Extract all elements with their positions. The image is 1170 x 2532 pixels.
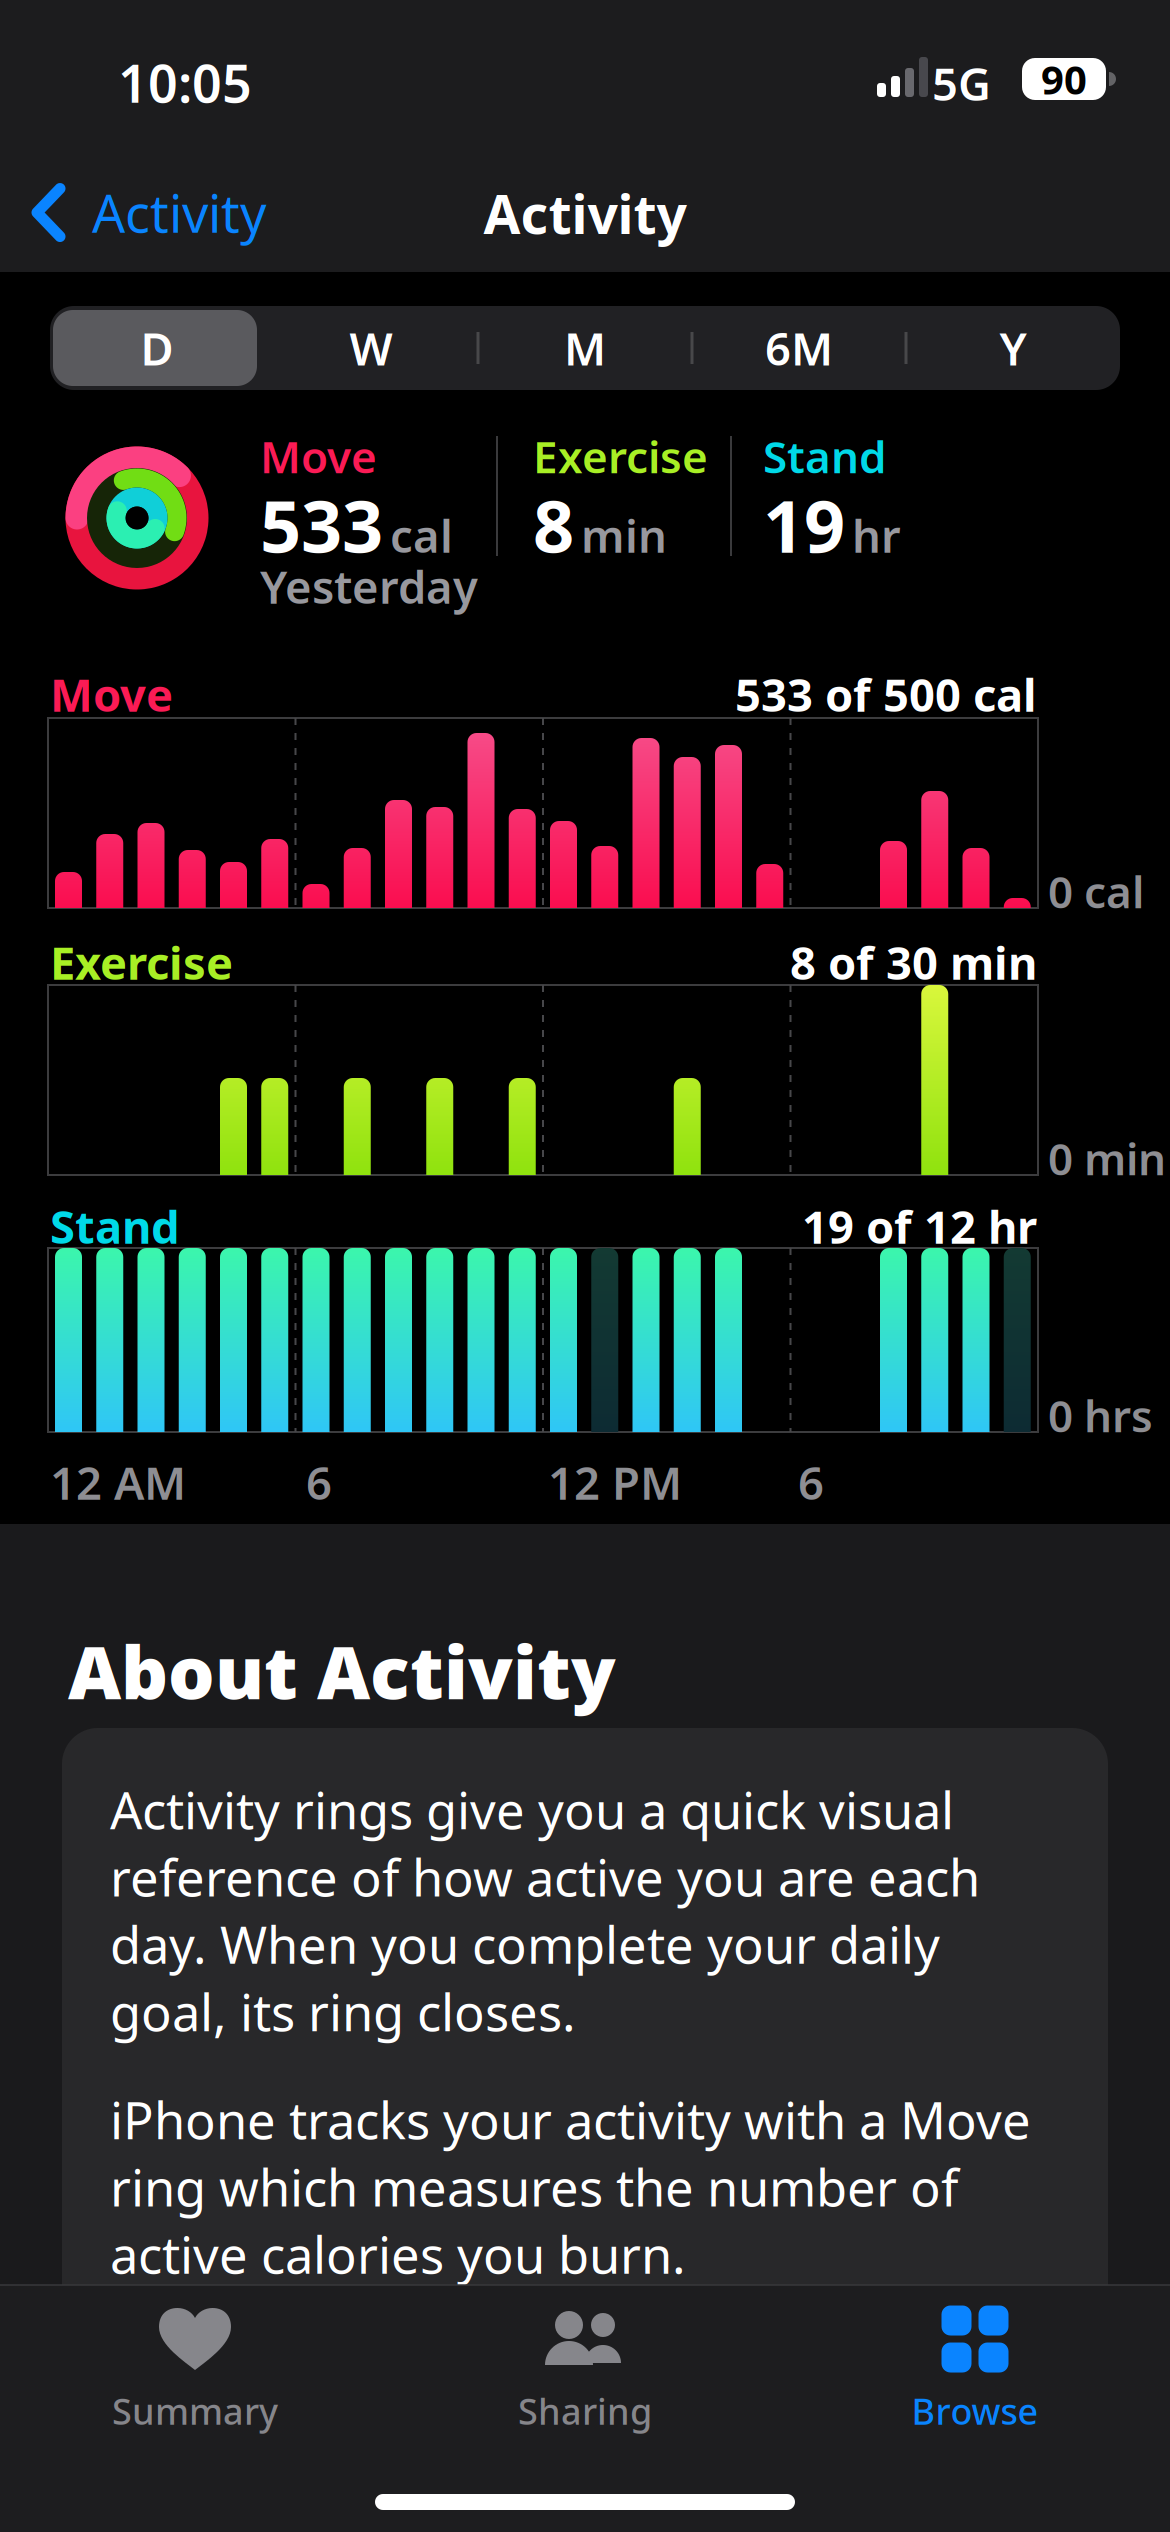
staticText: 12 PM — [548, 1452, 682, 1512]
staticText: Move — [260, 427, 377, 485]
staticText: Stand — [50, 1196, 180, 1256]
staticText: 10:05 — [118, 48, 252, 117]
staticText: Yesterday — [260, 556, 478, 616]
staticText: 533 of 500 cal — [735, 664, 1037, 724]
staticText: Stand — [763, 427, 887, 485]
staticText: Exercise — [50, 932, 233, 992]
staticText: 0 cal — [1048, 862, 1144, 920]
staticText: D — [140, 318, 173, 378]
button[interactable]: M — [478, 306, 692, 390]
staticText: 0 min — [1048, 1129, 1166, 1187]
staticText: About Activity — [68, 1622, 616, 1719]
staticText: Move — [50, 664, 173, 724]
staticText: 6M — [765, 318, 833, 378]
staticText: 8 — [533, 477, 574, 573]
staticText: 6 — [306, 1452, 332, 1512]
staticText: 19 — [763, 477, 845, 573]
button[interactable]: D — [50, 306, 264, 390]
staticText: Summary — [112, 2387, 278, 2435]
staticText: Activity rings give you a quick visual r… — [110, 1776, 980, 2045]
staticText: Activity — [483, 178, 686, 249]
staticText: hr — [852, 505, 901, 565]
button[interactable]: Sharing — [390, 2310, 780, 2460]
staticText: 8 of 30 min — [790, 932, 1037, 992]
staticText: W — [349, 318, 392, 378]
staticText: 19 of 12 hr — [802, 1196, 1037, 1256]
button[interactable]: 6M — [692, 306, 906, 390]
staticText: 12 AM — [50, 1452, 186, 1512]
staticText: Sharing — [518, 2387, 652, 2435]
button[interactable]: Browse — [780, 2310, 1170, 2460]
staticText: M — [564, 318, 606, 378]
staticText: cal — [390, 505, 453, 565]
button[interactable]: Y — [906, 306, 1120, 390]
staticText: 0 hrs — [1048, 1386, 1153, 1444]
staticText: 6 — [798, 1452, 824, 1512]
button[interactable]: Summary — [0, 2310, 390, 2460]
staticText: Y — [999, 318, 1026, 378]
staticText: min — [581, 505, 667, 565]
staticText: Browse — [911, 2387, 1038, 2435]
button[interactable]: Back — [0, 0, 237, 69]
staticText: Exercise — [533, 427, 708, 485]
staticText: iPhone tracks your activity with a Move … — [110, 2086, 1031, 2288]
staticText: 90 — [1041, 52, 1087, 105]
staticText: 5G — [932, 53, 991, 113]
button[interactable]: W — [264, 306, 478, 390]
staticText: 533 — [260, 477, 383, 573]
staticText: Activity — [92, 178, 267, 247]
